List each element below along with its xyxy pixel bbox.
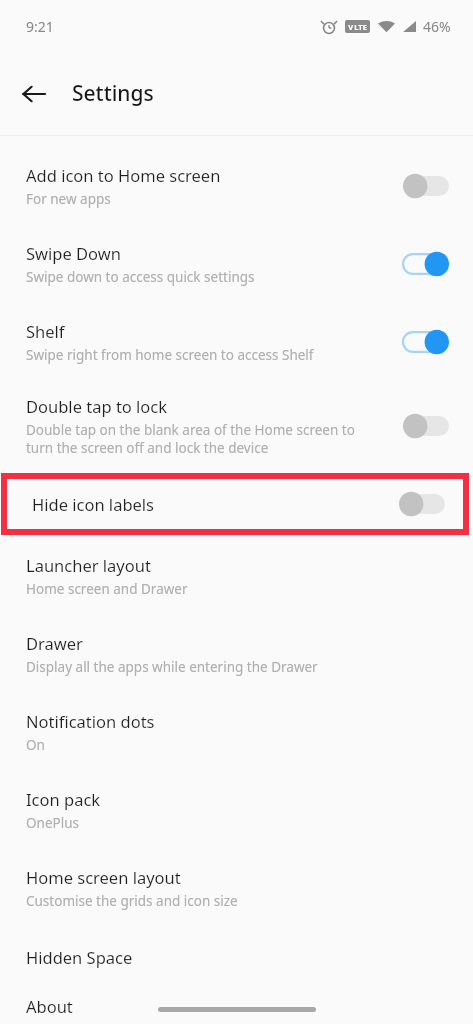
- staticText: Double tap to lock: [26, 395, 168, 417]
- staticText: Hide icon labels: [32, 493, 397, 515]
- staticText: Settings: [72, 79, 154, 108]
- staticText: 9:21: [26, 17, 54, 36]
- staticText: Shelf: [26, 320, 65, 342]
- button[interactable]: Toggle on: [401, 249, 451, 279]
- button[interactable]: Toggle off: [401, 171, 451, 201]
- button[interactable]: Hide icon labels: [7, 479, 463, 529]
- staticText: Display all the apps while entering the …: [26, 658, 318, 676]
- button[interactable]: Notification dots: [0, 693, 473, 771]
- staticText: Add icon to Home screen: [26, 164, 221, 186]
- button[interactable]: Hidden Space: [0, 927, 473, 987]
- button[interactable]: Drawer: [0, 615, 473, 693]
- staticText: 46%: [423, 17, 451, 36]
- staticText: Home screen and Drawer: [26, 580, 188, 598]
- staticText: On: [26, 736, 45, 754]
- staticText: Customise the grids and icon size: [26, 892, 238, 910]
- button[interactable]: Home screen layout: [0, 849, 473, 927]
- button[interactable]: Swipe Down: [0, 225, 473, 303]
- staticText: Swipe right from home screen to access S…: [26, 346, 314, 364]
- button[interactable]: Launcher layout: [0, 537, 473, 615]
- staticText: Notification dots: [26, 710, 155, 732]
- staticText: OnePlus: [26, 814, 79, 832]
- button[interactable]: Shelf: [0, 303, 473, 381]
- button[interactable]: Toggle on: [401, 327, 451, 357]
- staticText: Swipe Down: [26, 242, 121, 264]
- button[interactable]: Icon pack: [0, 771, 473, 849]
- staticText: Hidden Space: [26, 946, 133, 968]
- staticText: Swipe down to access quick settings: [26, 268, 255, 286]
- staticText: V LTE: [348, 22, 367, 32]
- button[interactable]: Toggle off: [397, 489, 447, 519]
- staticText: Drawer: [26, 632, 83, 654]
- button[interactable]: Toggle off: [401, 411, 451, 441]
- staticText: Double tap on the blank area of the Home…: [26, 421, 355, 457]
- staticText: Launcher layout: [26, 554, 151, 576]
- button[interactable]: Double tap to lock: [0, 381, 473, 471]
- button[interactable]: About: [0, 987, 473, 1024]
- staticText: For new apps: [26, 190, 111, 208]
- staticText: Icon pack: [26, 788, 101, 810]
- button[interactable]: Back: [10, 70, 58, 118]
- staticText: About: [26, 995, 73, 1017]
- button[interactable]: Add icon to Home screen: [0, 147, 473, 225]
- staticText: Home screen layout: [26, 866, 181, 888]
